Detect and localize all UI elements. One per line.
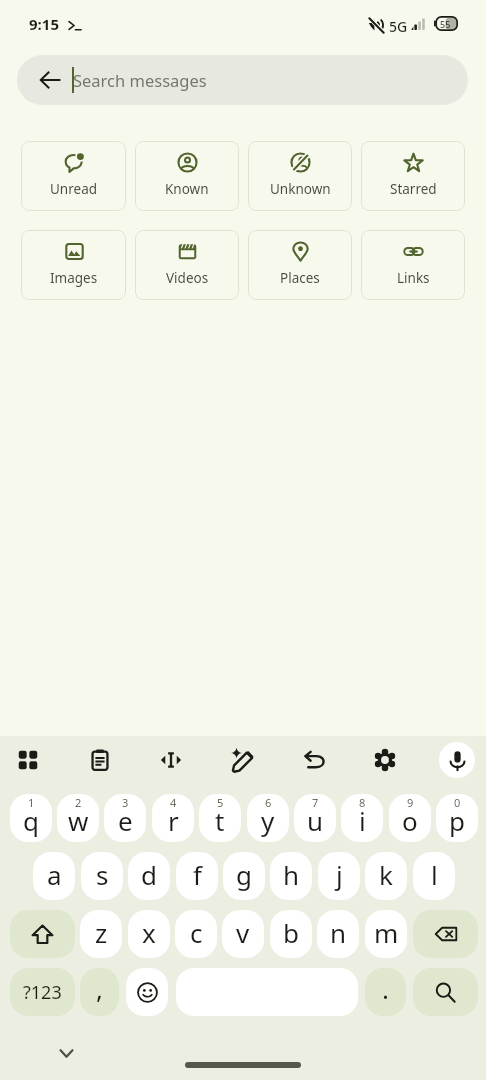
staticText: w [68,803,89,838]
staticText: Search messages [73,69,207,91]
staticText: t [215,803,225,838]
staticText: m [374,915,399,950]
button[interactable]: k [365,852,407,900]
button[interactable]: Magic compose [221,738,265,782]
button[interactable]: Text editing [149,738,193,782]
staticText: Known [165,180,209,198]
button[interactable]: w [57,794,99,842]
button[interactable]: y [247,794,289,842]
button[interactable]: Starred [361,141,465,211]
button[interactable]: Emoji [126,968,168,1016]
button[interactable]: Space [176,968,358,1016]
staticText: Unread [50,180,98,198]
staticText: Videos [166,269,209,287]
button[interactable]: Unread [21,141,126,211]
button[interactable]: v [222,910,264,958]
button[interactable]: f [176,852,218,900]
staticText: n [330,915,347,950]
staticText: a [47,857,62,892]
button[interactable]: n [317,910,359,958]
button[interactable]: Images [21,230,126,300]
staticText: f [193,857,202,892]
button[interactable]: e [104,794,146,842]
button[interactable]: Videos [135,230,239,300]
staticText: ?123 [23,980,62,1005]
staticText: e [118,803,133,838]
button[interactable]: Clipboard [78,738,122,782]
staticText: Images [50,269,98,287]
staticText: Places [280,269,320,287]
button[interactable]: t [199,794,241,842]
staticText: h [283,857,300,892]
button[interactable]: Apps [6,738,50,782]
staticText: 2 [75,795,82,810]
staticText: Starred [390,180,437,198]
staticText: 0 [454,795,461,810]
button[interactable]: q [10,794,52,842]
button[interactable]: Undo [292,738,336,782]
staticText: 4 [170,795,177,810]
button[interactable]: Known [135,141,239,211]
staticText: b [283,915,299,950]
button[interactable]: j [318,852,360,900]
staticText: v [236,915,250,950]
staticText: 5 [217,795,224,810]
staticText: 55 [440,18,451,30]
staticText: k [379,857,393,892]
button[interactable]: h [270,852,312,900]
button[interactable]: l [413,852,455,900]
button[interactable]: . [365,968,406,1016]
staticText: j [336,857,343,892]
button[interactable]: s [81,852,123,900]
button[interactable]: c [175,910,217,958]
button[interactable]: Back [17,55,468,105]
button[interactable]: Settings [363,738,407,782]
staticText: Links [397,269,430,287]
staticText: 7 [312,795,319,810]
button[interactable]: i [341,794,383,842]
button[interactable]: Shift [10,910,75,958]
button[interactable]: g [223,852,265,900]
staticText: z [95,915,108,950]
staticText: p [449,803,465,838]
button[interactable]: Back [28,58,72,102]
button[interactable]: , [80,968,119,1016]
staticText: 1 [28,795,35,810]
staticText: g [236,857,252,892]
button[interactable]: Links [361,230,465,300]
staticText: 9 [407,795,414,810]
staticText: 3 [122,795,129,810]
button[interactable]: d [128,852,170,900]
button[interactable]: m [365,910,407,958]
button[interactable]: b [270,910,312,958]
staticText: u [307,803,324,838]
staticText: 6 [265,795,272,810]
button[interactable]: z [80,910,122,958]
button[interactable]: Unknown [248,141,352,211]
staticText: r [168,803,179,838]
button[interactable]: Hide keyboard [50,1037,82,1069]
button[interactable]: a [33,852,75,900]
staticText: y [261,803,275,838]
staticText: 5G [389,17,408,36]
staticText: i [359,803,366,838]
button[interactable]: Search [413,968,478,1016]
staticText: 8 [359,795,366,810]
button[interactable]: u [294,794,336,842]
staticText: Unknown [270,180,331,198]
button[interactable]: x [128,910,170,958]
staticText: d [141,857,157,892]
staticText: 9:15 [29,14,59,34]
button[interactable]: Backspace [413,910,478,958]
button[interactable]: o [389,794,431,842]
button[interactable]: ?123 [10,968,75,1016]
button[interactable]: Places [248,230,352,300]
button[interactable]: Voice input [439,742,475,778]
staticText: x [142,915,156,950]
staticText: s [96,857,109,892]
staticText: q [23,803,39,838]
staticText: c [190,915,203,950]
staticText: l [431,857,438,892]
button[interactable]: r [152,794,194,842]
button[interactable]: p [436,794,478,842]
